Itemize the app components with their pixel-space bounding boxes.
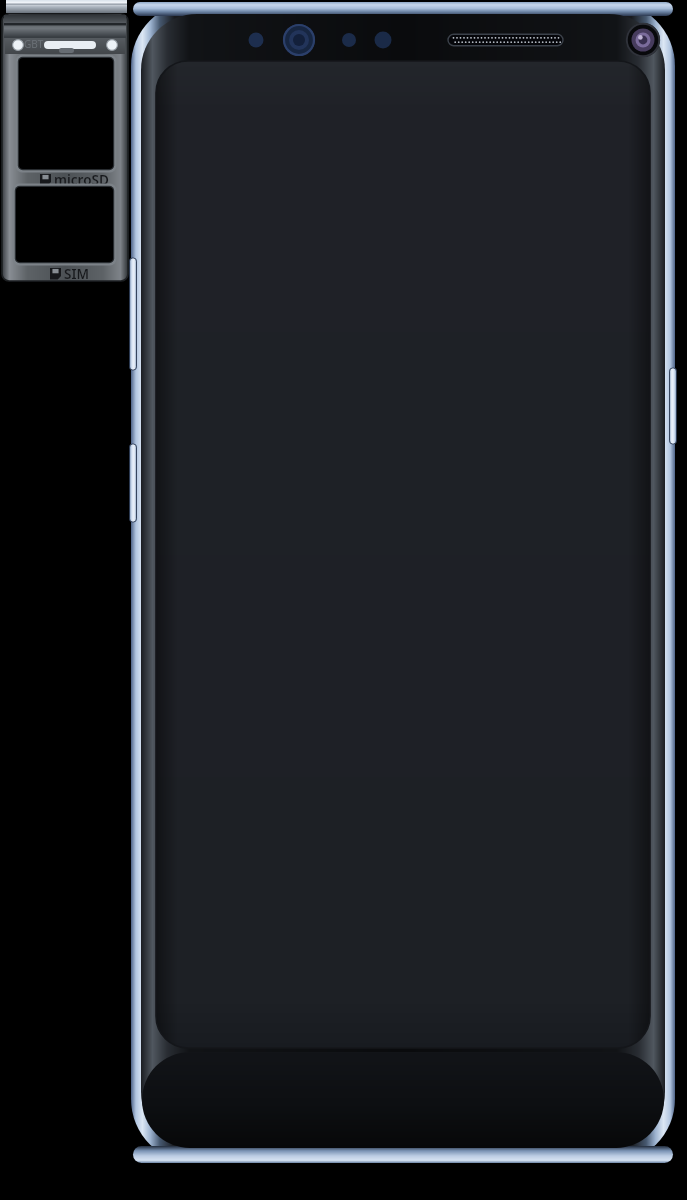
button[interactable]: Galaxy S8 phone with SIM and microSD car… [0, 0, 687, 1200]
